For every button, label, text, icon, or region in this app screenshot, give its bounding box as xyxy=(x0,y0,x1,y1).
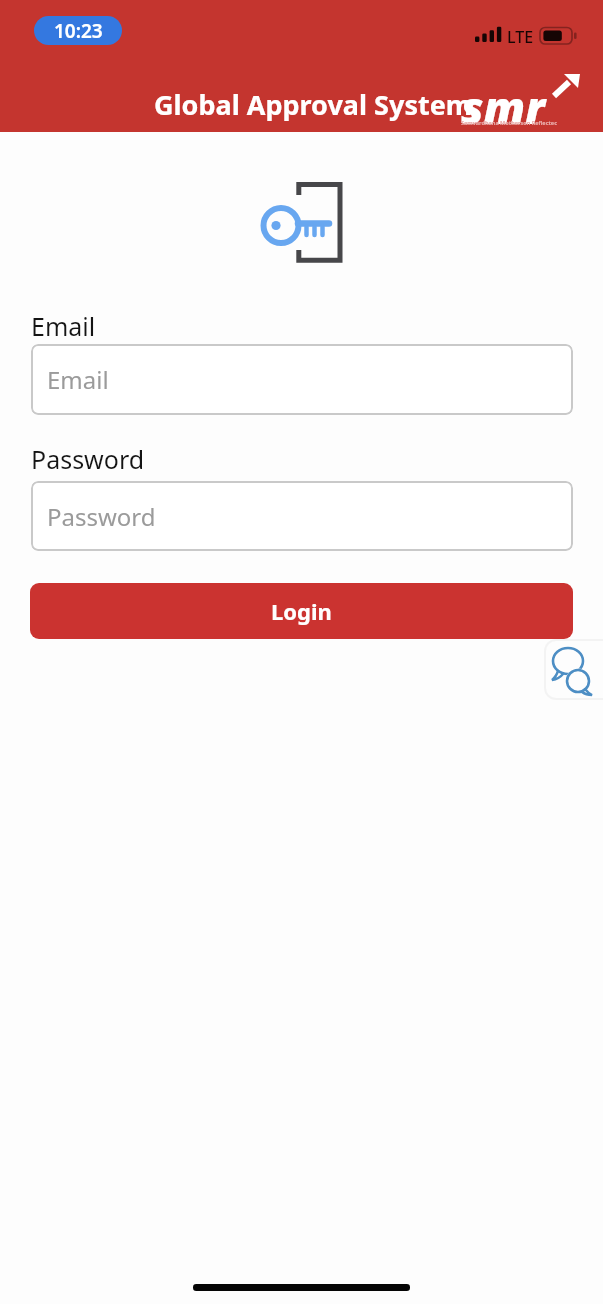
button[interactable]: Email xyxy=(31,344,573,415)
button[interactable]: 10:23 xyxy=(34,16,122,45)
staticText: Email xyxy=(31,309,96,343)
staticText: Samvardhana Motherson Reflectec xyxy=(461,119,557,126)
button[interactable]: Login xyxy=(30,583,573,639)
staticText: Password xyxy=(47,500,156,533)
button[interactable] xyxy=(546,641,603,698)
staticText: smr xyxy=(461,76,545,137)
staticText: Login xyxy=(271,596,332,626)
staticText: 10:23 xyxy=(54,18,103,44)
staticText: Password xyxy=(31,442,145,476)
button[interactable]: Password xyxy=(31,481,573,551)
staticText: Global Approval System xyxy=(154,86,473,123)
staticText: LTE xyxy=(507,26,534,48)
staticText: Email xyxy=(47,363,109,396)
